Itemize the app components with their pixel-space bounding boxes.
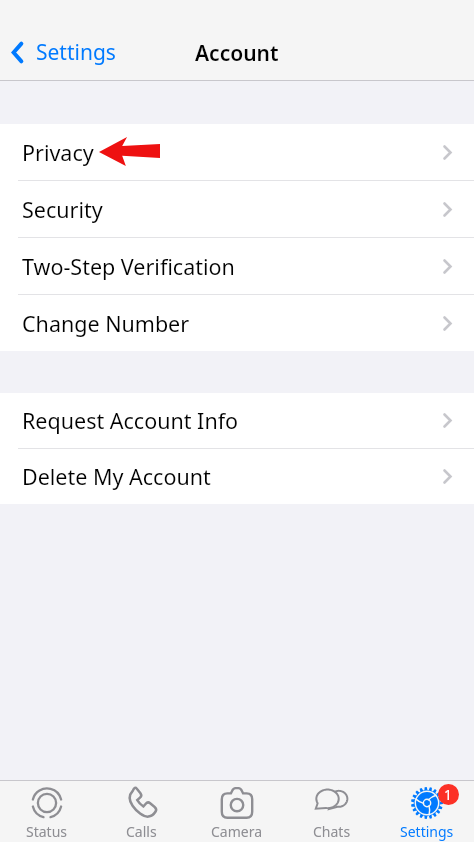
staticText: Settings [400,822,454,841]
button[interactable]: Privacy [0,124,474,180]
button[interactable]: Two-Step Verification [0,238,474,294]
staticText: Delete My Account [22,462,211,491]
button[interactable]: Delete My Account [0,449,474,504]
staticText: Security [22,195,103,224]
staticText: Privacy [22,138,94,167]
staticText: Calls [126,822,157,841]
button[interactable]: Settings [379,781,474,842]
button[interactable]: Change Number [0,295,474,351]
staticText: Settings [36,38,116,67]
staticText: Request Account Info [22,406,239,435]
staticText: 1 [444,785,453,804]
staticText: Two-Step Verification [22,252,235,281]
staticText: Change Number [22,309,190,338]
staticText: Chats [313,822,351,841]
button[interactable]: Request Account Info [0,393,474,448]
button[interactable]: Calls [94,781,189,842]
button[interactable]: Camera [189,781,284,842]
button[interactable]: Security [0,181,474,237]
button[interactable]: Status [0,781,94,842]
button[interactable]: Chats [284,781,379,842]
staticText: Status [26,822,68,841]
staticText: Account [195,39,279,68]
button[interactable]: Back to Settings [8,31,120,74]
staticText: Camera [211,822,263,841]
